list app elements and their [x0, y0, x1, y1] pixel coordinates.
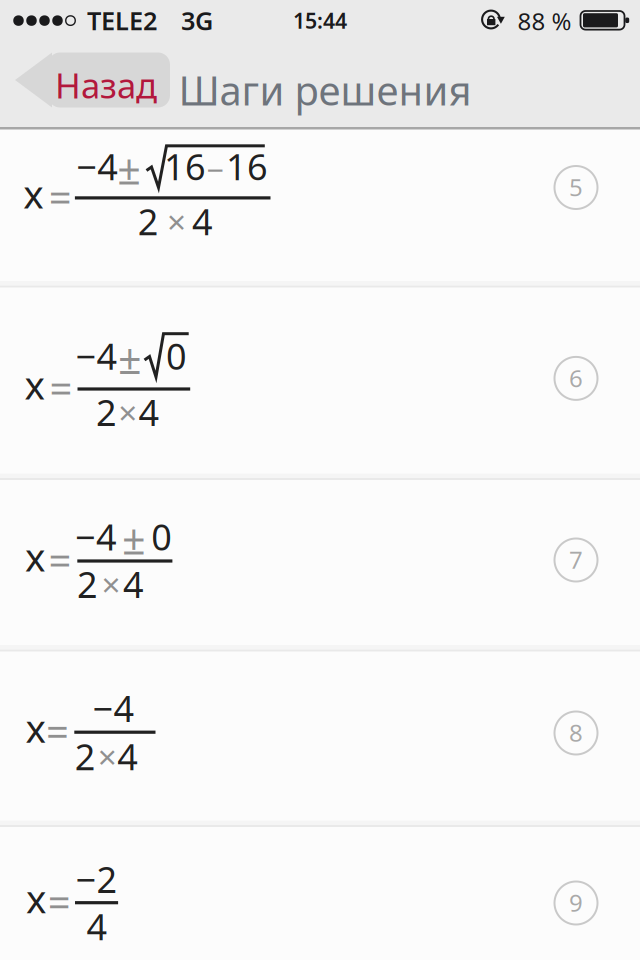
staticText: Шаги решения — [178, 63, 471, 116]
staticText: = — [46, 705, 69, 758]
staticText: 4 — [192, 197, 213, 245]
staticText: x — [26, 872, 46, 924]
staticText: −4 — [75, 513, 117, 560]
staticText: 2 — [96, 388, 117, 436]
staticText: 0 — [166, 332, 187, 380]
staticText: 4 — [117, 732, 138, 780]
staticText: x — [25, 531, 45, 582]
staticText: −4 — [76, 142, 118, 190]
staticText: 2 — [75, 732, 96, 780]
staticText: = — [49, 170, 72, 223]
staticText: −4 — [93, 684, 135, 732]
staticText: 7 — [569, 544, 583, 575]
staticText: = — [48, 533, 71, 586]
staticText: 8 — [569, 717, 583, 748]
staticText: 0 — [151, 513, 172, 560]
staticText: −4 — [76, 332, 118, 380]
staticText: 16 — [226, 142, 268, 190]
staticText: 9 — [569, 887, 583, 918]
staticText: 15:44 — [293, 6, 347, 35]
staticText: x — [26, 702, 46, 753]
staticText: 2 — [138, 197, 159, 245]
staticText: × — [118, 390, 137, 434]
staticText: 88 % — [517, 5, 571, 37]
staticText: TELE2 — [87, 4, 157, 37]
staticText: 6 — [569, 362, 583, 394]
staticText: 5 — [569, 171, 583, 203]
staticText: × — [98, 734, 117, 779]
staticText: = — [48, 875, 71, 928]
staticText: − — [206, 149, 224, 190]
staticText: ± — [122, 511, 146, 566]
staticText: 4 — [123, 560, 144, 608]
staticText: 2 — [77, 560, 98, 608]
staticText: × — [167, 199, 186, 243]
staticText: 4 — [87, 902, 108, 950]
staticText: −2 — [75, 855, 117, 903]
staticText: Назад — [55, 62, 157, 108]
staticText: = — [49, 361, 72, 414]
staticText: ± — [118, 331, 142, 385]
staticText: 16 — [164, 142, 206, 190]
staticText: x — [23, 168, 43, 219]
staticText: x — [24, 359, 44, 410]
staticText: 4 — [139, 388, 160, 436]
staticText: 3G — [181, 4, 213, 37]
staticText: ± — [117, 141, 141, 196]
staticText: × — [101, 562, 120, 606]
